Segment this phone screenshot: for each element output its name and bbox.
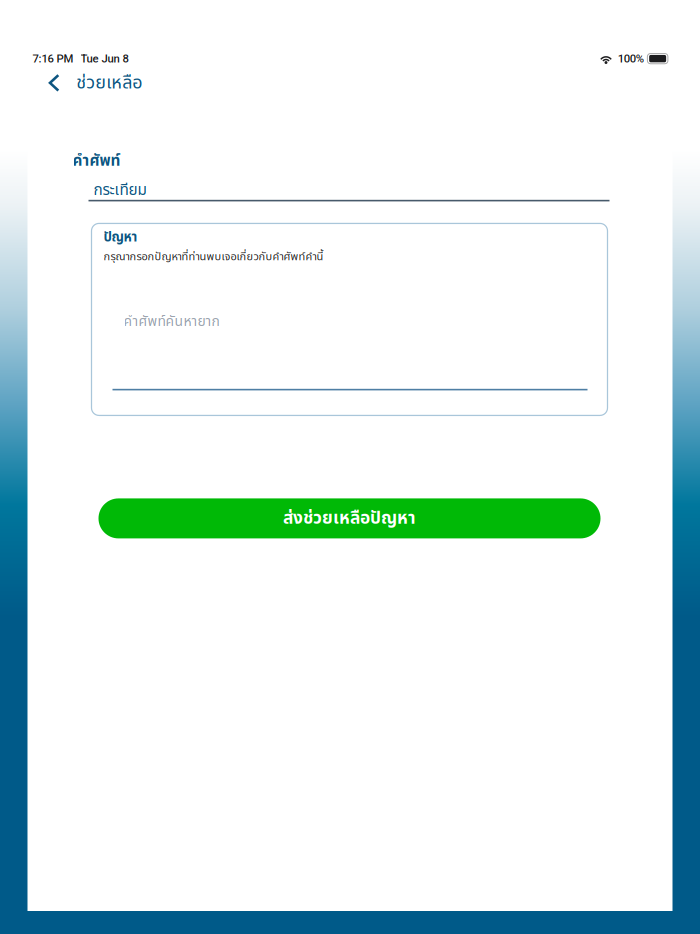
staticText: คำศัพท์คันหายาก — [123, 311, 219, 332]
staticText: กระเทียม — [93, 179, 146, 202]
staticText: ช่วยเหลือ — [76, 69, 142, 96]
staticText: คำศัพท์ — [72, 149, 120, 173]
staticText: ส่งช่วยเหลือปัญหา — [283, 505, 416, 531]
staticText: ปัญหา — [103, 227, 137, 247]
staticText: กรุณากรอกปัญหาที่ท่านพบเจอเกี่ยวกับคำศัพ… — [103, 249, 323, 265]
button[interactable]: ส่งช่วยเหลือปัญหา — [98, 498, 600, 538]
staticText: Tue Jun 8 — [80, 52, 128, 65]
staticText: 7:16 PM — [32, 52, 73, 65]
button[interactable]: ช่วยเหลือ — [27, 66, 150, 99]
staticText: 100% — [618, 52, 644, 65]
